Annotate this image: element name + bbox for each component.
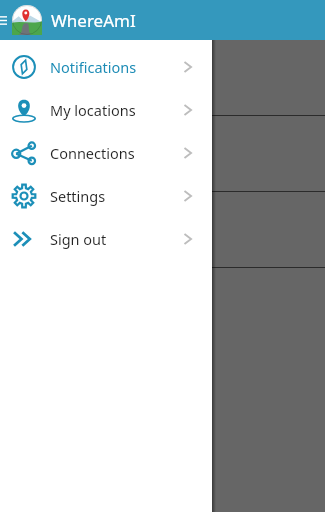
button[interactable]: Open navigation drawer <box>0 0 7 40</box>
staticText: Settings <box>50 186 177 206</box>
staticText: Timisoara, Romania <box>12 202 160 222</box>
button[interactable]: Notifications <box>0 45 212 88</box>
staticText: Connections <box>50 143 177 163</box>
button[interactable]: Bucuresti, Bucuresti cu <box>0 40 325 116</box>
staticText: Notifications <box>50 57 177 77</box>
staticText: Bucuresti, Bucuresti cu <box>12 50 188 70</box>
staticText: My locations <box>50 100 177 120</box>
button[interactable]: Connections <box>0 131 212 174</box>
button[interactable]: Settings <box>0 174 212 217</box>
staticText: Romania <box>12 226 67 244</box>
button[interactable]: Cluj-Napoca, Romania <box>0 116 325 192</box>
button[interactable]: Timisoara, Romania <box>0 192 325 268</box>
button[interactable]: Sign out <box>0 217 212 260</box>
staticText: WhereAmI <box>51 9 136 32</box>
staticText: Cluj-Napoca, Romania <box>12 126 177 146</box>
staticText: Romania <box>12 74 67 92</box>
button[interactable]: My locations <box>0 88 212 131</box>
staticText: Sign out <box>50 229 177 249</box>
staticText: Romania <box>12 150 67 168</box>
